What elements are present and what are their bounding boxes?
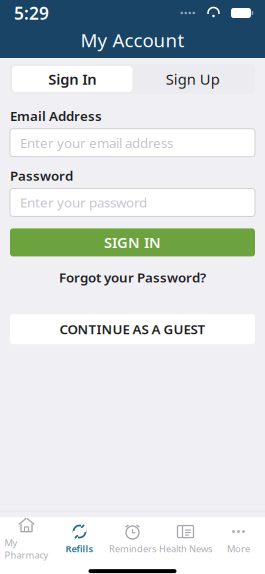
staticText: Reminders (109, 543, 156, 555)
button[interactable]: Refills (53, 523, 106, 555)
staticText: My Account (80, 28, 184, 52)
button[interactable]: CONTINUE AS A GUEST (10, 314, 255, 344)
button[interactable]: Health News (159, 523, 212, 555)
button[interactable]: Reminders (106, 523, 159, 555)
staticText: Health News (159, 543, 212, 555)
staticText: My Pharmacy (4, 536, 48, 561)
staticText: Sign Up (166, 69, 220, 89)
staticText: 5:29 (14, 1, 49, 24)
button[interactable]: Sign In (12, 66, 132, 92)
staticText: Enter your email address (20, 134, 173, 152)
button[interactable]: Sign Up (132, 66, 253, 92)
staticText: Email Address (10, 107, 102, 125)
staticText: More (227, 543, 250, 555)
staticText: Password (10, 167, 73, 184)
staticText: Refills (65, 543, 93, 555)
button[interactable]: Forgot your Password? (49, 262, 216, 292)
staticText: SIGN IN (104, 233, 161, 252)
staticText: Sign In (48, 69, 96, 89)
staticText: CONTINUE AS A GUEST (59, 320, 205, 338)
staticText: Enter your password (20, 194, 147, 211)
button[interactable]: More (212, 523, 265, 555)
button[interactable]: SIGN IN (10, 228, 255, 256)
button[interactable]: My Pharmacy (0, 516, 53, 561)
staticText: Forgot your Password? (59, 268, 206, 286)
